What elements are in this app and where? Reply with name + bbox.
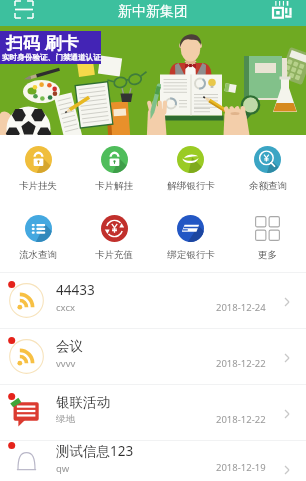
staticText: 余额查询 <box>249 180 287 192</box>
staticText: 2018-12-24 <box>216 301 266 314</box>
staticText: 2018-12-22 <box>216 357 266 370</box>
staticText: 44433 <box>56 281 95 299</box>
button[interactable]: 卡片解挂 <box>76 146 152 192</box>
button[interactable]: 余额查询 <box>229 146 306 192</box>
button[interactable]: 卡片挂失 <box>0 146 76 192</box>
staticText: 2018-12-19 <box>216 461 266 474</box>
staticText: 解绑银行卡 <box>167 180 215 192</box>
staticText: 绑定银行卡 <box>167 249 215 261</box>
button[interactable]: 测试信息123 <box>0 441 306 481</box>
staticText: qw <box>56 462 70 475</box>
button[interactable]: 流水查询 <box>0 215 76 261</box>
staticText: vvvv <box>56 357 76 370</box>
staticText: 卡片挂失 <box>19 180 57 192</box>
staticText: 更多 <box>258 249 277 261</box>
staticText: 2018-12-22 <box>216 413 266 426</box>
button[interactable]: Barcode scanner <box>271 1 293 23</box>
button[interactable]: 解绑银行卡 <box>152 146 229 192</box>
button[interactable]: 银联活动 <box>0 385 306 440</box>
button[interactable]: 卡片充值 <box>76 215 152 261</box>
button[interactable]: 会议 <box>0 329 306 384</box>
staticText: 绿地 <box>56 413 75 425</box>
staticText: 会议 <box>56 338 83 355</box>
button[interactable]: Scan QR code <box>10 0 37 19</box>
staticText: cxcx <box>56 301 75 314</box>
staticText: 卡片解挂 <box>95 180 133 192</box>
button[interactable]: 绑定银行卡 <box>152 215 229 261</box>
button[interactable]: 更多 <box>229 215 306 261</box>
staticText: 新中新集团 <box>118 3 188 21</box>
staticText: 卡片充值 <box>95 249 133 261</box>
staticText: 实时身份验证、门禁通道认证 <box>2 53 101 63</box>
staticText: 流水查询 <box>19 249 57 261</box>
staticText: 扫码 刷卡 <box>6 31 79 54</box>
staticText: 银联活动 <box>56 394 110 411</box>
staticText: 测试信息123 <box>56 442 134 460</box>
button[interactable]: 44433 <box>0 273 306 328</box>
